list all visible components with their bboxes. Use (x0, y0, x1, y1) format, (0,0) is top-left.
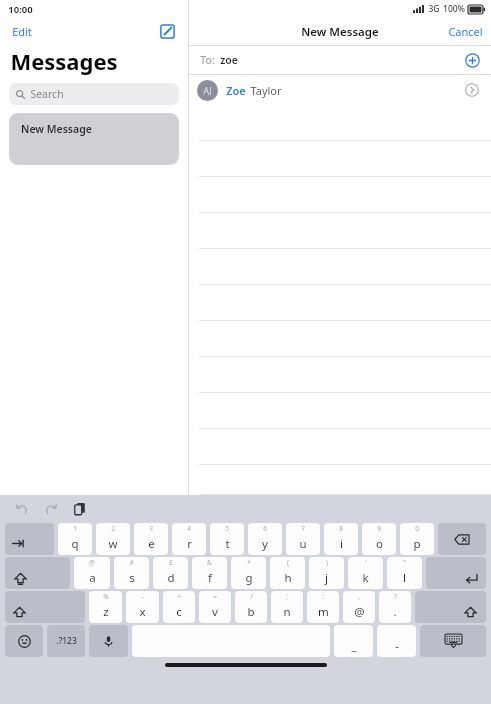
button[interactable] (189, 393, 491, 429)
button[interactable]: / (235, 591, 267, 623)
button[interactable]: 1 (58, 523, 92, 555)
button[interactable]: New Message (9, 113, 179, 165)
button[interactable]: 3 (134, 523, 168, 555)
button[interactable]: 8 (324, 523, 358, 555)
staticText: ? (394, 592, 397, 601)
button[interactable]: Compose new message (156, 20, 178, 42)
staticText: y (262, 536, 268, 552)
button[interactable]: Symbols (47, 625, 85, 657)
staticText: @ (89, 558, 95, 567)
button[interactable]: = (199, 591, 231, 623)
staticText: u (299, 536, 307, 552)
button[interactable]: & (192, 557, 227, 589)
staticText: m (318, 604, 329, 620)
staticText: v (212, 604, 218, 620)
button[interactable] (189, 105, 491, 141)
button[interactable]: AJ (189, 75, 491, 105)
button[interactable]: # (114, 557, 149, 589)
button[interactable]: Search (9, 83, 179, 105)
button[interactable]: Add contact (463, 51, 481, 69)
staticText: _ (351, 638, 357, 654)
staticText: Zoe (226, 83, 246, 98)
button[interactable]: Paste (72, 501, 88, 517)
staticText: - (395, 638, 399, 654)
button[interactable]: Cancel (440, 20, 491, 43)
button[interactable]: To: (189, 46, 491, 74)
staticText: * (247, 558, 251, 567)
button[interactable] (189, 213, 491, 249)
staticText: ; (286, 592, 288, 601)
button[interactable]: @ (74, 557, 110, 589)
button[interactable]: Shift (5, 591, 85, 623)
staticText: l (403, 570, 406, 586)
button[interactable]: + (163, 591, 195, 623)
staticText: Search (30, 87, 64, 101)
button[interactable]: _ (334, 625, 373, 657)
button[interactable] (189, 141, 491, 177)
button[interactable]: Hide keyboard (420, 625, 486, 657)
button[interactable]: 6 (248, 523, 282, 555)
button[interactable]: 0 (400, 523, 434, 555)
button[interactable]: Emoji (5, 625, 43, 657)
staticText: j (325, 570, 328, 586)
staticText: # (129, 558, 134, 567)
button[interactable]: - (126, 591, 159, 623)
staticText: d (167, 570, 175, 586)
button[interactable]: - (377, 625, 416, 657)
button[interactable]: ( (270, 557, 305, 589)
staticText: o (376, 536, 383, 552)
button[interactable]: , (343, 591, 375, 623)
button[interactable]: ; (271, 591, 303, 623)
staticText: w (108, 536, 118, 552)
button[interactable] (189, 285, 491, 321)
staticText: i (340, 536, 343, 552)
staticText: 6 (263, 524, 267, 533)
button[interactable]: ? (379, 591, 411, 623)
staticText: 2 (111, 524, 115, 533)
staticText: 8 (339, 524, 343, 533)
button[interactable]: 4 (172, 523, 206, 555)
button[interactable]: 7 (286, 523, 320, 555)
button[interactable]: Tab (5, 523, 54, 555)
button[interactable]: Edit (10, 22, 34, 41)
button[interactable] (189, 249, 491, 285)
staticText: / (250, 592, 253, 601)
button[interactable] (189, 429, 491, 465)
staticText: - (141, 592, 144, 601)
button[interactable]: Backspace (438, 523, 486, 555)
button[interactable] (189, 321, 491, 357)
staticText: Cancel (448, 24, 483, 39)
button[interactable]: Dictation (89, 625, 128, 657)
button[interactable]: " (387, 557, 422, 589)
staticText: & (207, 558, 212, 567)
button[interactable]: 2 (96, 523, 130, 555)
button[interactable]: * (231, 557, 266, 589)
button[interactable]: Shift (415, 591, 486, 623)
button[interactable]: : (307, 591, 339, 623)
button[interactable]: Undo (14, 501, 30, 517)
button[interactable] (189, 177, 491, 213)
button[interactable]: ' (348, 557, 383, 589)
staticText: 10:00 (8, 3, 33, 16)
button[interactable]: Redo (42, 501, 58, 517)
button[interactable]: Contact details (463, 81, 481, 99)
button[interactable] (189, 465, 491, 495)
staticText: Taylor (250, 83, 282, 98)
button[interactable]: 5 (210, 523, 244, 555)
staticText: @ (354, 604, 365, 620)
button[interactable]: % (89, 591, 122, 623)
button[interactable] (189, 357, 491, 393)
button[interactable]: £ (153, 557, 188, 589)
staticText: New Message (301, 24, 379, 40)
button[interactable]: 9 (362, 523, 396, 555)
button[interactable]: Return (426, 557, 486, 589)
staticText: b (247, 604, 255, 620)
staticText: x (139, 604, 146, 620)
button[interactable]: ) (309, 557, 344, 589)
staticText: To: (200, 53, 215, 67)
button[interactable]: Caps lock (5, 557, 70, 589)
staticText: c (176, 604, 182, 620)
staticText: New Message (21, 122, 92, 136)
staticText: % (103, 592, 109, 601)
